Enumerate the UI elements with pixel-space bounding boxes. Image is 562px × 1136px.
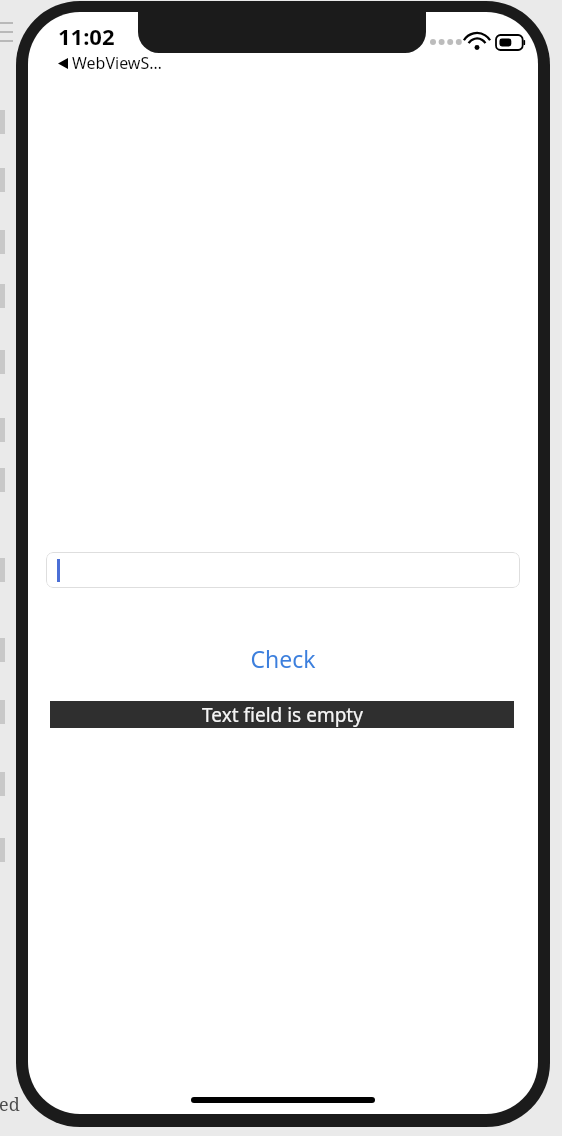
button[interactable]: Text input field (46, 552, 520, 588)
staticText: ed (0, 1092, 20, 1117)
staticText: WebViewS… (72, 52, 162, 74)
other: Battery (496, 35, 527, 50)
other: Cellular signal (430, 39, 456, 45)
staticText: 11:02 (58, 21, 115, 51)
other: Wi-Fi (466, 34, 488, 50)
staticText: Check (250, 643, 316, 674)
button[interactable]: Check (28, 636, 538, 680)
staticText: Text field is empty (202, 702, 363, 728)
